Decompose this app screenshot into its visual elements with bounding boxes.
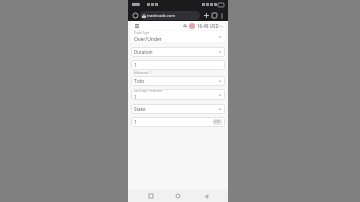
button[interactable]: More options [218, 12, 225, 19]
button[interactable]: Home [131, 11, 140, 20]
staticText: Duration [134, 49, 153, 55]
button[interactable]: Duration [131, 47, 225, 57]
button[interactable]: Home [173, 191, 183, 201]
staticText: tradecade.com [147, 13, 176, 18]
button[interactable]: Tabs [210, 11, 218, 19]
staticText: 1 [134, 62, 137, 68]
button[interactable]: Account [189, 23, 195, 29]
button[interactable]: Stake [131, 104, 225, 114]
button[interactable]: New tab [202, 11, 210, 19]
button[interactable]: 1 [131, 60, 225, 70]
button[interactable]: tradecade.com [140, 11, 200, 20]
button[interactable]: USD [213, 119, 222, 125]
staticText: 16.48 USD [197, 23, 219, 29]
staticText: Ticks [134, 78, 145, 84]
button[interactable]: Ticks [131, 76, 225, 86]
button[interactable]: Menu [133, 22, 140, 29]
staticText: 1 [134, 94, 137, 100]
button[interactable]: 16.48 USD [197, 23, 223, 29]
staticText: 1 [134, 119, 137, 125]
staticText: USD [214, 120, 221, 124]
staticText: Trade Type [134, 31, 150, 35]
button[interactable]: Notifications [181, 22, 188, 29]
button[interactable]: Back [201, 191, 211, 201]
button[interactable]: Last Digit Prediction [131, 89, 225, 100]
button[interactable]: Trade Type [131, 31, 225, 42]
staticText: Minimum: 1 [134, 71, 151, 75]
button[interactable]: Recent apps [146, 191, 156, 201]
staticText: Over/Under [134, 36, 162, 42]
staticText: Last Digit Prediction [134, 89, 163, 93]
staticText: Stake [134, 106, 146, 112]
button[interactable]: 1 [131, 117, 225, 127]
